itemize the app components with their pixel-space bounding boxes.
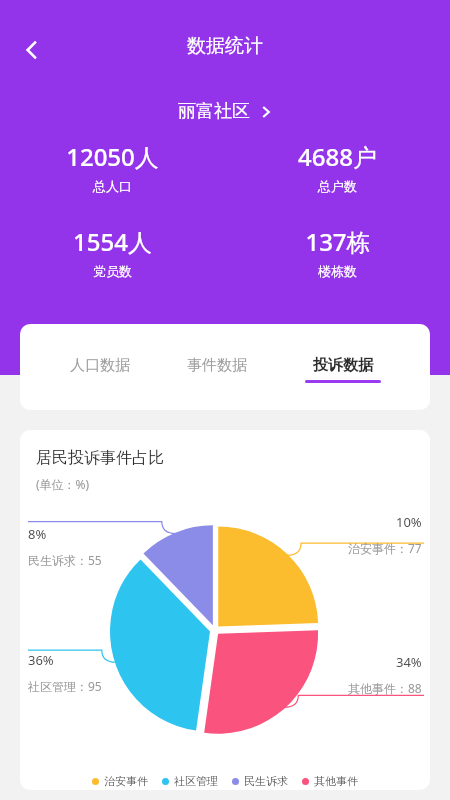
staticText: 治安事件：77 bbox=[348, 540, 422, 556]
staticText: 投诉数据 bbox=[313, 356, 373, 375]
staticText: 总户数 bbox=[318, 178, 357, 194]
staticText: 治安事件 bbox=[104, 774, 148, 788]
button[interactable]: 治安事件 bbox=[92, 774, 148, 788]
button[interactable]: 人口数据 bbox=[62, 354, 138, 382]
staticText: 楼栋数 bbox=[318, 263, 357, 279]
staticText: 丽富社区 bbox=[178, 100, 250, 123]
button[interactable]: 12050人 bbox=[0, 140, 225, 194]
staticText: 12050人 bbox=[66, 140, 159, 173]
staticText: 居民投诉事件占比 bbox=[36, 448, 164, 468]
staticText: 10% bbox=[396, 513, 422, 531]
staticText: 社区管理 bbox=[174, 774, 218, 788]
staticText: 34% bbox=[396, 653, 422, 671]
staticText: 其他事件：88 bbox=[348, 680, 422, 696]
staticText: 36% bbox=[28, 651, 54, 669]
button[interactable]: 137栋 bbox=[225, 225, 450, 279]
button[interactable]: 其他事件 bbox=[302, 774, 358, 788]
staticText: 社区管理：95 bbox=[28, 678, 102, 694]
button[interactable]: 4688户 bbox=[225, 140, 450, 194]
staticText: 137栋 bbox=[305, 225, 371, 258]
staticText: 事件数据 bbox=[187, 356, 247, 375]
button[interactable]: 事件数据 bbox=[179, 354, 255, 382]
button[interactable]: 1554人 bbox=[0, 225, 225, 279]
staticText: 党员数 bbox=[93, 263, 132, 279]
staticText: 8% bbox=[28, 525, 47, 543]
staticText: 总人口 bbox=[93, 178, 132, 194]
button[interactable]: 社区管理 bbox=[162, 774, 218, 788]
staticText: 4688户 bbox=[298, 140, 377, 173]
staticText: 人口数据 bbox=[70, 356, 130, 375]
button[interactable]: 丽富社区 bbox=[170, 96, 281, 127]
staticText: 数据统计 bbox=[187, 34, 263, 58]
button[interactable]: Back bbox=[10, 28, 54, 72]
staticText: 民生诉求：55 bbox=[28, 552, 102, 568]
staticText: 民生诉求 bbox=[244, 774, 288, 788]
staticText: 其他事件 bbox=[314, 774, 358, 788]
button[interactable]: 投诉数据 bbox=[297, 354, 389, 385]
staticText: (单位：%) bbox=[36, 476, 90, 492]
staticText: 1554人 bbox=[73, 225, 152, 258]
button[interactable]: 民生诉求 bbox=[232, 774, 288, 788]
